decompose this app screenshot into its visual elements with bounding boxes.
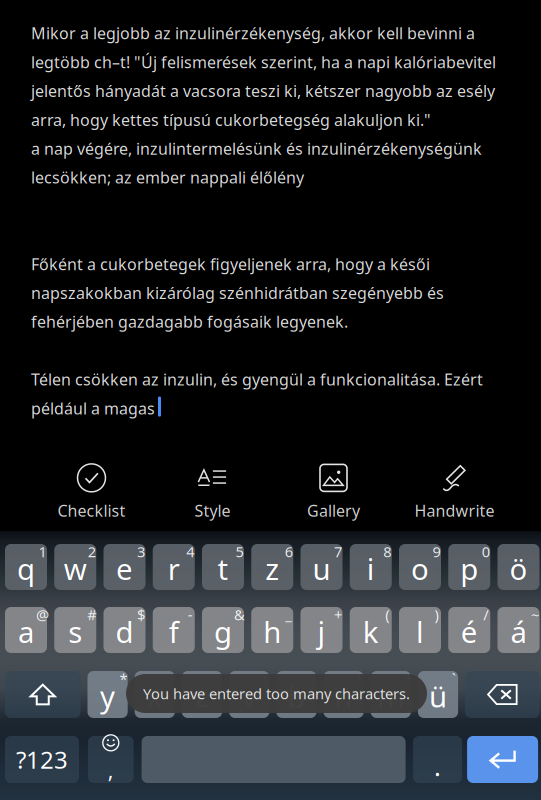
staticText: a [18, 612, 34, 651]
staticText: $ [137, 605, 145, 624]
staticText: e [116, 549, 133, 588]
staticText: c [195, 676, 209, 715]
button[interactable]: Style [152, 466, 273, 518]
staticText: ' [216, 669, 219, 688]
staticText: ) [434, 605, 438, 624]
button[interactable]: l [399, 607, 441, 653]
staticText: l [416, 612, 424, 651]
staticText: például a magas [31, 398, 155, 419]
button[interactable]: Emoji [88, 736, 134, 783]
button[interactable]: b [276, 671, 316, 718]
button[interactable]: t [202, 544, 244, 590]
button[interactable]: s [54, 607, 96, 653]
staticText: q [17, 549, 35, 588]
button[interactable]: f [153, 607, 195, 653]
staticText: ! [357, 669, 361, 688]
staticText: á [510, 612, 526, 651]
button[interactable]: Handwrite [394, 466, 515, 518]
button[interactable]: Return [467, 736, 538, 783]
staticText: h [263, 612, 281, 651]
staticText: d [115, 612, 133, 651]
staticText: p [460, 549, 478, 588]
staticText: - [188, 605, 193, 624]
staticText: i [367, 549, 375, 588]
staticText: 4 [186, 542, 194, 561]
staticText: ü [429, 676, 447, 715]
button[interactable]: Gallery [273, 466, 394, 518]
staticText: ö [509, 549, 527, 588]
staticText: x [147, 676, 163, 715]
staticText: Style [194, 500, 230, 521]
staticText: u [312, 549, 330, 588]
staticText: . [434, 750, 441, 783]
button[interactable]: ö [497, 544, 539, 590]
staticText: v [242, 676, 257, 715]
button[interactable]: ?123 [5, 736, 79, 783]
staticText: + [334, 605, 342, 624]
staticText: y [100, 676, 115, 715]
staticText: z [265, 549, 279, 588]
staticText: , [108, 756, 114, 784]
button[interactable]: z [251, 544, 293, 590]
button[interactable]: k [350, 607, 392, 653]
staticText: jelentős hányadát a vacsora teszi ki, ké… [31, 80, 495, 101]
button[interactable]: d [103, 607, 145, 653]
staticText: ~ [531, 605, 539, 624]
staticText: @ [36, 605, 49, 624]
button[interactable]: g [202, 607, 244, 653]
button[interactable]: c [182, 671, 222, 718]
button[interactable]: h [251, 607, 293, 653]
staticText: 8 [383, 542, 391, 561]
staticText: napszakokban kizárólag szénhidrátban sze… [31, 282, 444, 303]
staticText: # [87, 605, 96, 624]
staticText: lecsökken; az ember nappali élőlény [31, 167, 304, 188]
button[interactable]: é [448, 607, 490, 653]
staticText: Mikor a legjobb az inzulinérzékenység, a… [31, 22, 475, 44]
button[interactable]: y [87, 671, 128, 718]
button[interactable]: p [448, 544, 490, 590]
staticText: * [119, 669, 127, 688]
staticText: 2 [88, 542, 96, 561]
button[interactable]: e [103, 544, 145, 590]
staticText: Handwrite [414, 500, 494, 521]
staticText: f [169, 612, 179, 651]
staticText: ? [404, 669, 410, 688]
button[interactable]: n [323, 671, 364, 718]
staticText: j [317, 612, 325, 651]
staticText: Gallery [307, 500, 360, 521]
staticText: & [234, 605, 245, 624]
staticText: w [64, 549, 87, 588]
staticText: Télen csökken az inzulin, és gyengül a f… [31, 369, 483, 390]
button[interactable]: v [229, 671, 269, 718]
staticText: m [377, 676, 404, 715]
button[interactable]: q [5, 544, 47, 590]
staticText: / [483, 605, 488, 624]
staticText: n [335, 676, 353, 715]
button[interactable]: Checklist [31, 466, 152, 518]
staticText: : [263, 669, 267, 688]
button[interactable]: i [350, 544, 392, 590]
button[interactable]: ü [418, 671, 458, 718]
button[interactable]: w [54, 544, 96, 590]
button[interactable]: u [300, 544, 342, 590]
staticText: g [214, 612, 232, 651]
button[interactable]: . [413, 736, 462, 783]
staticText: legtöbb ch–t! "Új felismerések szerint, … [31, 51, 496, 73]
staticText: Checklist [57, 500, 125, 521]
button[interactable]: x [135, 671, 175, 718]
staticText: 3 [137, 542, 145, 561]
button[interactable]: j [300, 607, 342, 653]
button[interactable]: Backspace [465, 671, 540, 718]
staticText: " [168, 669, 174, 688]
staticText: ?123 [16, 744, 68, 775]
button[interactable]: Shift [5, 671, 80, 718]
button[interactable]: r [153, 544, 195, 590]
button[interactable]: a [5, 607, 47, 653]
staticText: r [168, 549, 180, 588]
button[interactable]: m [371, 671, 411, 718]
button[interactable]: o [399, 544, 441, 590]
button[interactable]: á [497, 607, 539, 653]
staticText: b [287, 676, 305, 715]
staticText: s [68, 612, 82, 651]
